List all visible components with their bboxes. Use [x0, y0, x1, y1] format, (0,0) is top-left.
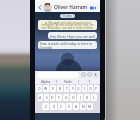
staticText: Alpha: [41, 79, 51, 84]
staticText: C: [60, 104, 63, 109]
button[interactable]: V: [66, 103, 72, 110]
staticText: R: [59, 86, 62, 91]
staticText: I: [84, 86, 86, 91]
staticText: I: [89, 79, 91, 84]
staticText: Today: [63, 14, 72, 18]
staticText: S: [46, 95, 48, 100]
staticText: K: [86, 95, 89, 100]
staticText: W: [44, 86, 48, 91]
button[interactable]: How is work until today or here in Canad…: [40, 41, 95, 49]
button[interactable]: W: [43, 85, 49, 92]
staticText: G: [65, 95, 68, 100]
button[interactable]: Z: [42, 103, 49, 110]
button[interactable]: K: [84, 94, 90, 101]
staticText: Y: [72, 86, 74, 91]
button[interactable]: Y: [70, 85, 75, 92]
button[interactable]: M: [87, 103, 93, 110]
button[interactable]: Voice call: [97, 3, 98, 12]
button[interactable]: Sticker: [81, 72, 86, 77]
staticText: B: [75, 104, 78, 109]
button[interactable]: T: [64, 85, 69, 92]
staticText: P: [95, 86, 98, 91]
button[interactable]: Back: [36, 2, 43, 12]
button[interactable]: J: [77, 94, 83, 101]
button[interactable]: Hey Oliver, Hope you are well: [50, 32, 95, 39]
staticText: T: [66, 86, 68, 91]
staticText: H: [72, 95, 75, 100]
staticText: O: [89, 86, 92, 91]
button[interactable]: U: [76, 85, 81, 92]
staticText: Oliver Harram: [54, 4, 88, 11]
button[interactable]: I: [82, 85, 87, 92]
staticText: E: [52, 86, 54, 91]
button[interactable]: Video call: [88, 3, 97, 12]
button[interactable]: E: [50, 85, 56, 92]
button[interactable]: X: [50, 103, 57, 110]
button[interactable]: Alpha: [35, 78, 56, 84]
staticText: Hey Oliver, Hope you are well: [50, 34, 95, 38]
button[interactable]: N: [80, 103, 86, 110]
staticText: Q: [38, 86, 41, 91]
staticText: A: [39, 95, 42, 100]
button[interactable]: L: [91, 94, 97, 101]
staticText: How is work until today or here in Canad…: [40, 41, 95, 49]
staticText: U: [77, 86, 80, 91]
button[interactable]: S: [44, 94, 49, 101]
button[interactable]: Today: [63, 14, 72, 18]
staticText: F: [58, 95, 60, 100]
staticText: L: [93, 95, 95, 100]
staticText: N: [82, 104, 85, 109]
staticText: V: [68, 104, 71, 109]
button[interactable]: D: [50, 94, 55, 101]
button[interactable]: Voice message: [93, 72, 98, 77]
staticText: 🔒 Messages and calls are end-to-end encr…: [40, 21, 95, 29]
button[interactable]: P: [94, 85, 99, 92]
staticText: D: [51, 95, 54, 100]
staticText: Z: [45, 104, 47, 109]
staticText: J: [80, 95, 81, 100]
button[interactable]: A: [38, 94, 43, 101]
button[interactable]: G: [63, 94, 69, 101]
button[interactable]: C: [58, 103, 65, 110]
button[interactable]: F: [56, 94, 62, 101]
button[interactable]: H: [70, 94, 76, 101]
button[interactable]: Yeah: [57, 78, 78, 84]
button[interactable]: Camera: [87, 72, 92, 77]
button[interactable]: B: [73, 103, 79, 110]
staticText: X: [53, 104, 55, 109]
button[interactable]: Q: [36, 85, 42, 92]
button[interactable]: I: [79, 78, 100, 84]
button[interactable]: 🔒 Messages and calls are end-to-end encr…: [40, 21, 95, 29]
staticText: Yeah: [64, 79, 72, 84]
button[interactable]: O: [88, 85, 93, 92]
button[interactable]: R: [57, 85, 63, 92]
staticText: M: [88, 104, 92, 109]
